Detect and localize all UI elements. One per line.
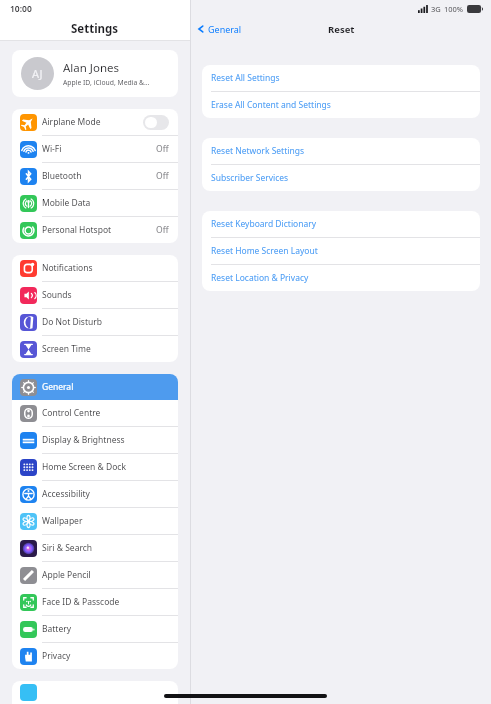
staticText: 3G bbox=[431, 4, 441, 14]
staticText: Erase All Content and Settings bbox=[211, 99, 331, 111]
staticText: Wallpaper bbox=[42, 515, 169, 527]
button[interactable]: Wi-Fi bbox=[12, 136, 178, 162]
staticText: Bluetooth bbox=[42, 170, 156, 182]
button[interactable]: Home Screen & Dock bbox=[12, 454, 178, 480]
staticText: Off bbox=[156, 170, 169, 182]
staticText: General bbox=[42, 381, 169, 393]
staticText: Reset Location & Privacy bbox=[211, 272, 309, 284]
staticText: Alan Jones bbox=[63, 60, 120, 76]
button[interactable]: Control Centre bbox=[12, 400, 178, 426]
staticText: Apple Pencil bbox=[42, 569, 169, 581]
staticText: Home Screen & Dock bbox=[42, 461, 169, 473]
button[interactable]: Personal Hotspot bbox=[12, 217, 178, 243]
button[interactable]: General bbox=[12, 374, 178, 400]
button[interactable]: Accessibility bbox=[12, 481, 178, 507]
button[interactable]: Siri & Search bbox=[12, 535, 178, 561]
button[interactable]: Do Not Disturb bbox=[12, 309, 178, 335]
staticText: Notifications bbox=[42, 262, 169, 274]
button[interactable]: Reset Home Screen Layout bbox=[202, 238, 480, 264]
staticText: Accessibility bbox=[42, 488, 169, 500]
button[interactable]: Reset Keyboard Dictionary bbox=[202, 211, 480, 237]
staticText: Reset Home Screen Layout bbox=[211, 245, 318, 257]
staticText: Reset Network Settings bbox=[211, 145, 304, 157]
staticText: Siri & Search bbox=[42, 542, 169, 554]
staticText: Battery bbox=[42, 623, 169, 635]
staticText: 100% bbox=[444, 4, 464, 14]
button[interactable]: Screen Time bbox=[12, 336, 178, 362]
staticText: Sounds bbox=[42, 289, 169, 301]
staticText: Reset Keyboard Dictionary bbox=[211, 218, 317, 230]
button[interactable]: Airplane Mode bbox=[12, 109, 178, 135]
staticText: Display & Brightness bbox=[42, 434, 169, 446]
button[interactable]: Reset Network Settings bbox=[202, 138, 480, 164]
staticText: Airplane Mode bbox=[42, 116, 143, 128]
button[interactable]: Display & Brightness bbox=[12, 427, 178, 453]
staticText: Reset bbox=[328, 23, 355, 36]
button[interactable]: General bbox=[191, 23, 248, 35]
staticText: Apple ID, iCloud, Media &… bbox=[63, 78, 150, 87]
button[interactable]: Battery bbox=[12, 616, 178, 642]
staticText: Control Centre bbox=[42, 407, 169, 419]
button[interactable]: AJ bbox=[12, 50, 178, 97]
staticText: Mobile Data bbox=[42, 197, 169, 209]
button[interactable]: Subscriber Services bbox=[202, 165, 480, 191]
staticText: Off bbox=[156, 143, 169, 155]
button[interactable]: Wallpaper bbox=[12, 508, 178, 534]
staticText: General bbox=[208, 23, 242, 35]
button[interactable]: Reset Location & Privacy bbox=[202, 265, 480, 291]
staticText: Off bbox=[156, 224, 169, 236]
button[interactable]: Mobile Data bbox=[12, 190, 178, 216]
staticText: Settings bbox=[71, 21, 119, 37]
button[interactable]: Bluetooth bbox=[12, 163, 178, 189]
button[interactable]: Reset All Settings bbox=[202, 65, 480, 91]
button[interactable]: Apple Pencil bbox=[12, 562, 178, 588]
button[interactable]: Sounds bbox=[12, 282, 178, 308]
staticText: Privacy bbox=[42, 650, 169, 662]
button[interactable]: Notifications bbox=[12, 255, 178, 281]
staticText: Screen Time bbox=[42, 343, 169, 355]
staticText: Wi-Fi bbox=[42, 143, 156, 155]
staticText: Subscriber Services bbox=[211, 172, 289, 184]
staticText: Face ID & Passcode bbox=[42, 596, 169, 608]
button[interactable]: Erase All Content and Settings bbox=[202, 92, 480, 118]
staticText: 10:00 bbox=[10, 3, 32, 15]
staticText: Do Not Disturb bbox=[42, 316, 169, 328]
staticText: AJ bbox=[32, 66, 43, 81]
staticText: Reset All Settings bbox=[211, 72, 280, 84]
button[interactable]: Privacy bbox=[12, 643, 178, 669]
button[interactable]: Face ID & Passcode bbox=[12, 589, 178, 615]
staticText: Personal Hotspot bbox=[42, 224, 156, 236]
